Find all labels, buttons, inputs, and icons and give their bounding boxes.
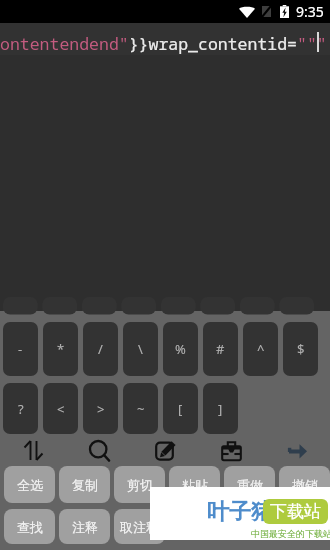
button[interactable]: Tab [264, 434, 330, 466]
staticText: 注释 [72, 519, 98, 535]
staticText: 叶子猪 [207, 498, 273, 526]
button[interactable]: 粘贴 [169, 466, 220, 503]
staticText: < [57, 400, 65, 418]
staticText: * [57, 340, 65, 358]
staticText: # [216, 340, 225, 358]
button[interactable]: $ [283, 322, 318, 376]
staticText: 查找 [17, 519, 43, 535]
staticText: 9:35 [296, 2, 324, 21]
staticText: - [18, 340, 23, 358]
staticText: $ [297, 340, 305, 358]
staticText: ontentendend"}}wrap_contentid=""" [0, 32, 327, 54]
staticText: > [97, 400, 105, 418]
staticText: % [175, 340, 186, 358]
button[interactable]: > [83, 383, 118, 434]
button[interactable]: 取注释 [114, 509, 165, 544]
button[interactable]: % [163, 322, 198, 376]
button[interactable]: Move up and down [0, 434, 66, 466]
button[interactable]: - [3, 322, 38, 376]
button[interactable]: < [43, 383, 78, 434]
staticText: ] [218, 400, 223, 418]
button[interactable]: Work [198, 434, 264, 466]
button[interactable]: 复制 [59, 466, 110, 503]
staticText: 中国最安全的下载站 [251, 528, 330, 539]
staticText: ? [18, 400, 24, 418]
staticText: 重做 [237, 477, 263, 493]
button[interactable]: # [203, 322, 238, 376]
button[interactable]: 撤销 [279, 466, 330, 503]
button[interactable]: 剪切 [114, 466, 165, 503]
button[interactable]: 查找 [4, 509, 55, 544]
staticText: / [98, 340, 103, 358]
button[interactable]: 注释 [59, 509, 110, 544]
staticText: 下载站 [270, 501, 321, 522]
button[interactable]: ? [3, 383, 38, 434]
button[interactable]: ^ [243, 322, 278, 376]
button[interactable]: ~ [123, 383, 158, 434]
button[interactable]: [ [163, 383, 198, 434]
button[interactable]: ] [203, 383, 238, 434]
button[interactable]: / [83, 322, 118, 376]
staticText: 撤销 [292, 477, 318, 493]
staticText: 全选 [17, 477, 43, 493]
button[interactable]: Edit [132, 434, 198, 466]
button[interactable]: 全选 [4, 466, 55, 503]
staticText: 粘贴 [182, 477, 208, 493]
button[interactable]: * [43, 322, 78, 376]
staticText: 取注释 [120, 519, 159, 535]
staticText: [ [178, 400, 183, 418]
button[interactable]: 重做 [224, 466, 275, 503]
staticText: 剪切 [127, 477, 153, 493]
button[interactable]: Search [66, 434, 132, 466]
button[interactable]: \ [123, 322, 158, 376]
staticText: ~ [137, 400, 145, 418]
staticText: \ [138, 340, 143, 358]
staticText: 复制 [72, 477, 98, 493]
staticText: ^ [257, 340, 265, 358]
